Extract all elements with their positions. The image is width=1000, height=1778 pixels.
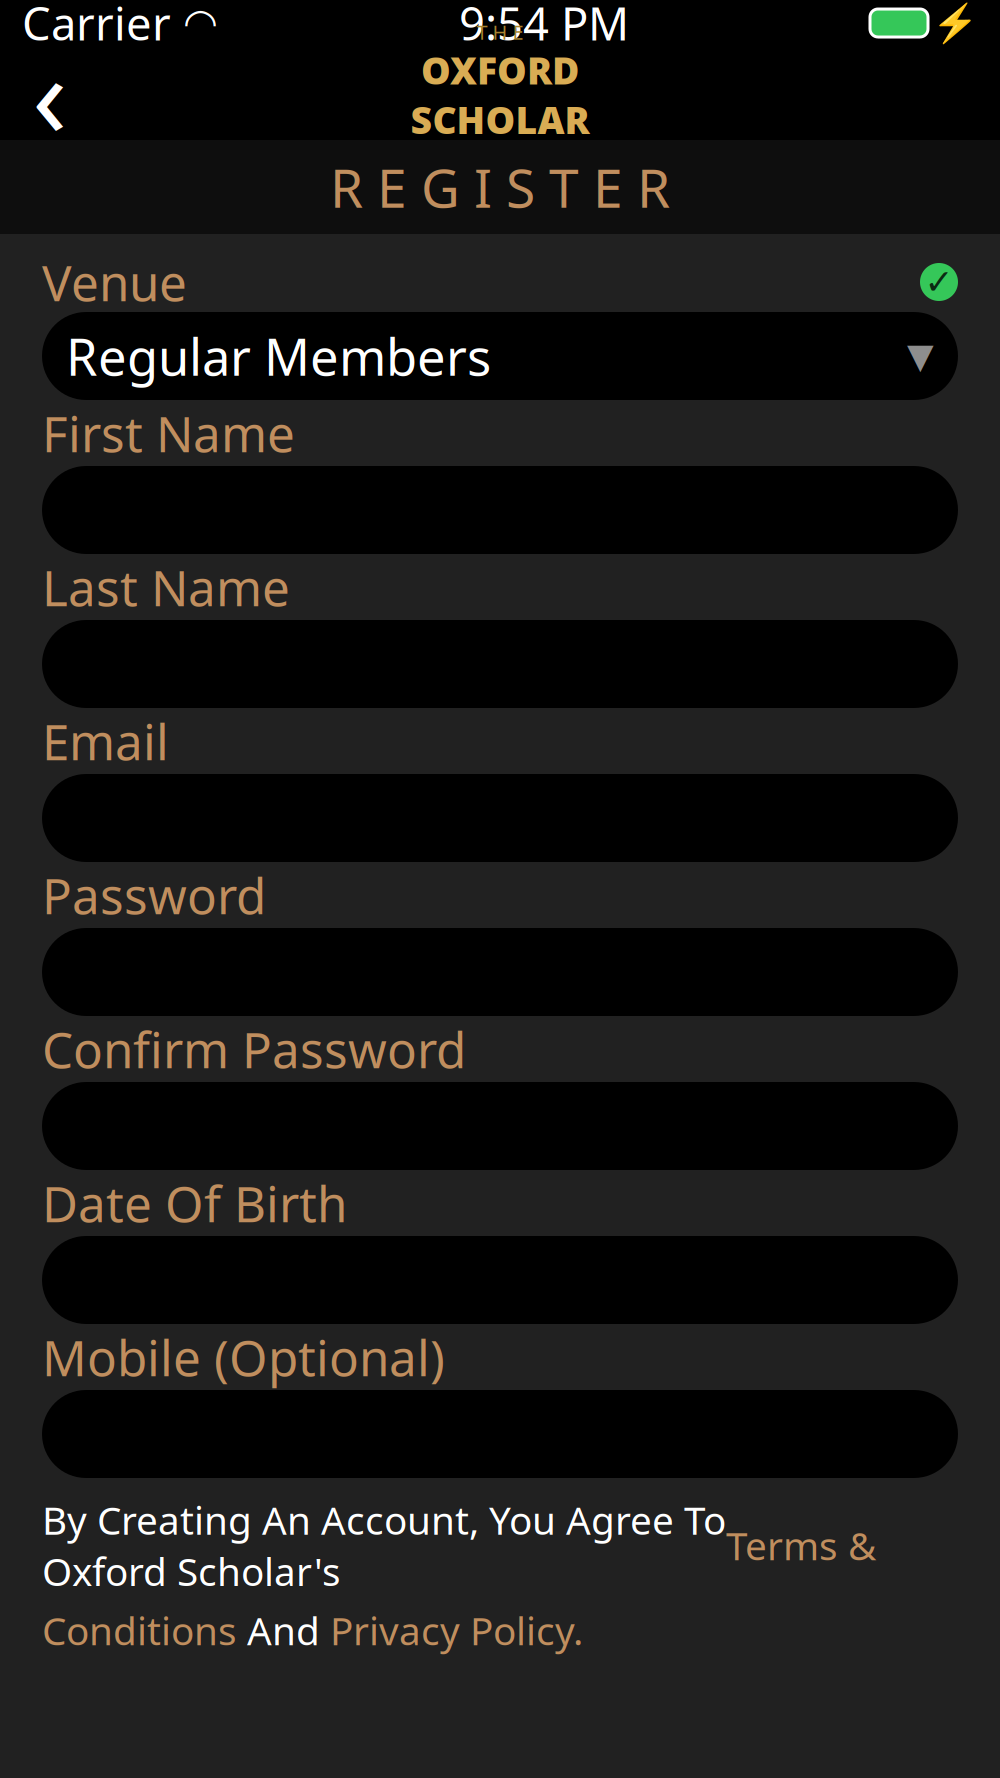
staticText: Conditions [42, 1605, 237, 1656]
staticText: Confirm Password [42, 1016, 466, 1082]
staticText: Mobile (Optional) [42, 1324, 445, 1390]
button[interactable]: Mobile (Optional) [42, 1390, 958, 1478]
staticText: ▼ [907, 336, 934, 376]
staticText: Password [42, 862, 266, 928]
staticText: SCHOLAR [410, 95, 589, 144]
button[interactable]: First Name [42, 466, 958, 554]
staticText: Email [42, 708, 169, 774]
staticText: Last Name [42, 554, 290, 620]
staticText: OXFORD [421, 45, 579, 95]
staticText: By Creating An Account, You Agree To Oxf… [42, 1494, 726, 1597]
staticText: Carrier [22, 0, 171, 53]
staticText: First Name [42, 400, 295, 466]
staticText: ⚡ [932, 2, 978, 44]
staticText: Terms & [726, 1520, 876, 1571]
button[interactable]: Conditions [42, 1605, 237, 1656]
staticText: Privacy Policy. [330, 1605, 583, 1656]
button[interactable]: Password [42, 928, 958, 1016]
button[interactable]: Regular Members [42, 312, 958, 400]
button[interactable]: Privacy Policy. [330, 1605, 583, 1656]
staticText: R E G I S T E R [330, 152, 670, 222]
button[interactable]: Back [0, 46, 100, 140]
button[interactable]: Confirm Password [42, 1082, 958, 1170]
staticText: ◠ [183, 0, 218, 46]
staticText: ✓ [924, 262, 953, 302]
staticText: ‹ [32, 17, 68, 169]
button[interactable]: Date Of Birth [42, 1236, 958, 1324]
button[interactable]: Terms & [726, 1520, 876, 1571]
staticText: 9:54 PM [459, 0, 629, 53]
staticText: Date Of Birth [42, 1170, 347, 1236]
staticText: Venue [42, 249, 187, 315]
staticText: T H E [476, 19, 523, 45]
button[interactable]: Last Name [42, 620, 958, 708]
staticText: Regular Members [66, 322, 491, 390]
staticText: And [237, 1605, 330, 1656]
button[interactable]: Email [42, 774, 958, 862]
